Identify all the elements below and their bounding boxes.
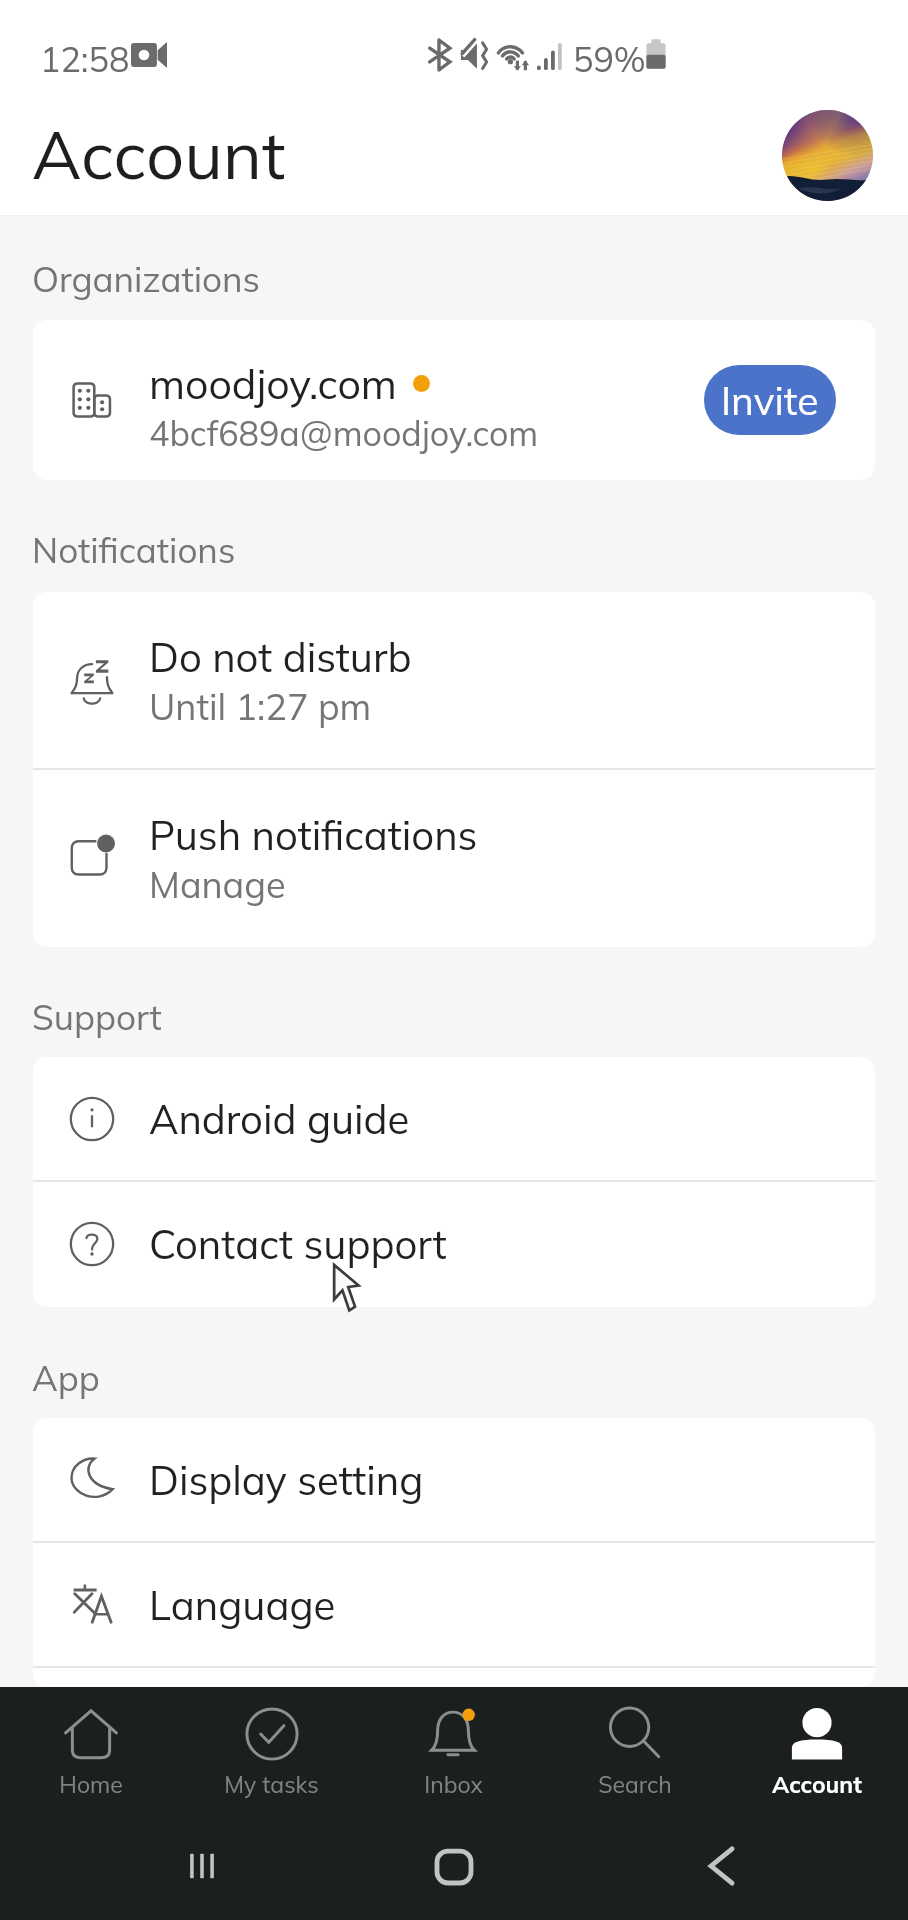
staticText: 59% bbox=[573, 38, 646, 81]
staticText: moodjoy.com bbox=[149, 358, 397, 409]
button[interactable]: Contact support bbox=[33, 1182, 875, 1305]
button[interactable]: Profile photo bbox=[782, 110, 873, 201]
staticText: Manage bbox=[149, 862, 286, 907]
staticText: Account bbox=[772, 1770, 862, 1799]
staticText: 12:58 bbox=[40, 38, 130, 81]
staticText: Search bbox=[598, 1770, 672, 1799]
button[interactable]: Inbox bbox=[362, 1687, 544, 1812]
staticText: Push notifications bbox=[149, 810, 478, 860]
button[interactable]: Home bbox=[0, 1687, 181, 1812]
staticText: Language bbox=[149, 1580, 336, 1630]
button[interactable]: Push notifications bbox=[33, 770, 875, 946]
staticText: Android guide bbox=[149, 1094, 410, 1144]
button[interactable]: Invite bbox=[704, 365, 836, 435]
button[interactable]: Search bbox=[544, 1687, 726, 1812]
button[interactable]: Back bbox=[701, 1845, 743, 1887]
button[interactable]: Home bbox=[433, 1845, 475, 1887]
button[interactable]: Do not disturb bbox=[33, 592, 875, 768]
staticText: Until 1:27 pm bbox=[149, 684, 372, 729]
staticText: Inbox bbox=[424, 1770, 483, 1799]
staticText: Display setting bbox=[149, 1455, 424, 1505]
staticText: App bbox=[32, 1356, 100, 1400]
button[interactable]: Android guide bbox=[33, 1057, 875, 1180]
staticText: Account bbox=[32, 112, 286, 196]
button[interactable]: Language bbox=[33, 1543, 875, 1666]
staticText: Do not disturb bbox=[149, 632, 412, 682]
staticText: Organizations bbox=[32, 257, 260, 301]
button[interactable]: Account bbox=[726, 1687, 908, 1812]
button[interactable]: Recent apps bbox=[181, 1845, 223, 1887]
staticText: Contact support bbox=[149, 1219, 447, 1269]
staticText: Invite bbox=[721, 376, 819, 425]
staticText: Home bbox=[59, 1770, 123, 1799]
button[interactable]: moodjoy.com bbox=[33, 320, 875, 480]
staticText: My tasks bbox=[224, 1770, 319, 1799]
staticText: Support bbox=[32, 995, 162, 1039]
staticText: 4bcf689a@moodjoy.com bbox=[149, 412, 539, 455]
staticText: Notifications bbox=[32, 528, 236, 572]
button[interactable]: My tasks bbox=[181, 1687, 362, 1812]
button[interactable]: Display setting bbox=[33, 1418, 875, 1541]
